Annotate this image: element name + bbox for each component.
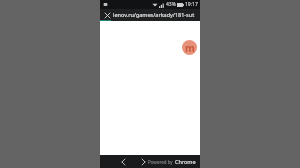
staticText: Powered by [148,159,173,165]
staticText: 19:17 [185,1,198,8]
button[interactable]: Forward [138,157,148,167]
button[interactable]: Close [103,11,111,19]
staticText: Chrome [175,158,196,165]
button[interactable]: Powered by [148,158,196,165]
staticText: 43% [166,1,176,8]
staticText: m [185,41,195,55]
staticText: lenov.ru/games/arkady/181-sut [113,11,195,18]
button[interactable]: lenov.ru/games/arkady/181-sut [113,11,197,18]
button[interactable]: Back [118,157,128,167]
